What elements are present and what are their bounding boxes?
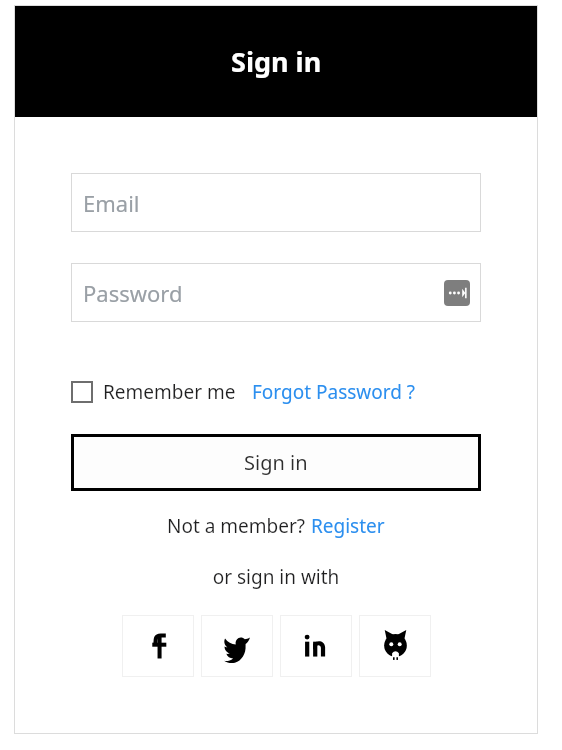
staticText: Password <box>83 278 183 308</box>
button[interactable]: Sign in with LinkedIn <box>280 615 352 677</box>
staticText: Not a member? <box>167 513 311 539</box>
button[interactable]: Show password <box>444 280 470 306</box>
button[interactable]: Email <box>71 173 481 232</box>
staticText: Remember me <box>103 379 236 405</box>
staticText: Forgot Password ? <box>252 379 416 405</box>
staticText: or sign in with <box>71 564 481 590</box>
button[interactable]: Remember me <box>71 381 93 403</box>
button[interactable]: Sign in with GitHub <box>359 615 431 677</box>
staticText: Sign in <box>244 449 308 476</box>
button[interactable]: Register <box>311 513 385 539</box>
button[interactable]: Password <box>71 263 481 322</box>
button[interactable]: Remember me <box>103 379 236 405</box>
staticText: Register <box>311 513 385 539</box>
button[interactable]: Sign in <box>71 434 481 491</box>
button[interactable]: Sign in with Facebook <box>122 615 194 677</box>
button[interactable]: Forgot Password ? <box>252 379 416 405</box>
staticText: Sign in <box>231 43 322 80</box>
staticText: Email <box>83 188 140 218</box>
button[interactable]: Sign in with Twitter <box>201 615 273 677</box>
